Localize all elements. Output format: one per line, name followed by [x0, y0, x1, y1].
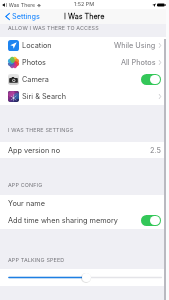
staticText: I Was There: [6, 2, 36, 8]
staticText: APP CONFIG: [8, 182, 43, 189]
staticText: Your name: [8, 199, 45, 208]
button[interactable]: Photos: [0, 54, 169, 71]
button[interactable]: Camera: [0, 71, 169, 88]
staticText: Settings: [12, 12, 40, 21]
button[interactable]: Settings: [0, 10, 43, 23]
button[interactable]: App talking speed: [0, 269, 169, 286]
staticText: 1:52 PM: [74, 1, 95, 8]
staticText: APP TALKING SPEED: [8, 257, 65, 264]
staticText: App version no: [8, 146, 61, 155]
staticText: Camera: [22, 75, 49, 84]
staticText: 2.5: [150, 146, 161, 155]
button[interactable]: Toggle: [141, 74, 161, 85]
button[interactable]: Your name: [0, 195, 169, 212]
button[interactable]: Location: [0, 37, 169, 54]
button[interactable]: App version no: [0, 142, 169, 158]
staticText: Photos: [22, 58, 46, 67]
button[interactable]: Toggle: [141, 215, 161, 226]
staticText: Siri & Search: [22, 92, 67, 101]
button[interactable]: Add time when sharing memory: [0, 212, 169, 229]
staticText: ALLOW I WAS THERE TO ACCESS: [8, 25, 99, 32]
staticText: I Was There: [64, 12, 105, 21]
button[interactable]: Siri & Search: [0, 88, 169, 105]
staticText: Add time when sharing memory: [8, 216, 118, 225]
staticText: I WAS THERE SETTINGS: [8, 127, 74, 134]
staticText: While Using: [114, 41, 156, 50]
staticText: All Photos: [121, 58, 156, 67]
staticText: Location: [22, 41, 52, 50]
